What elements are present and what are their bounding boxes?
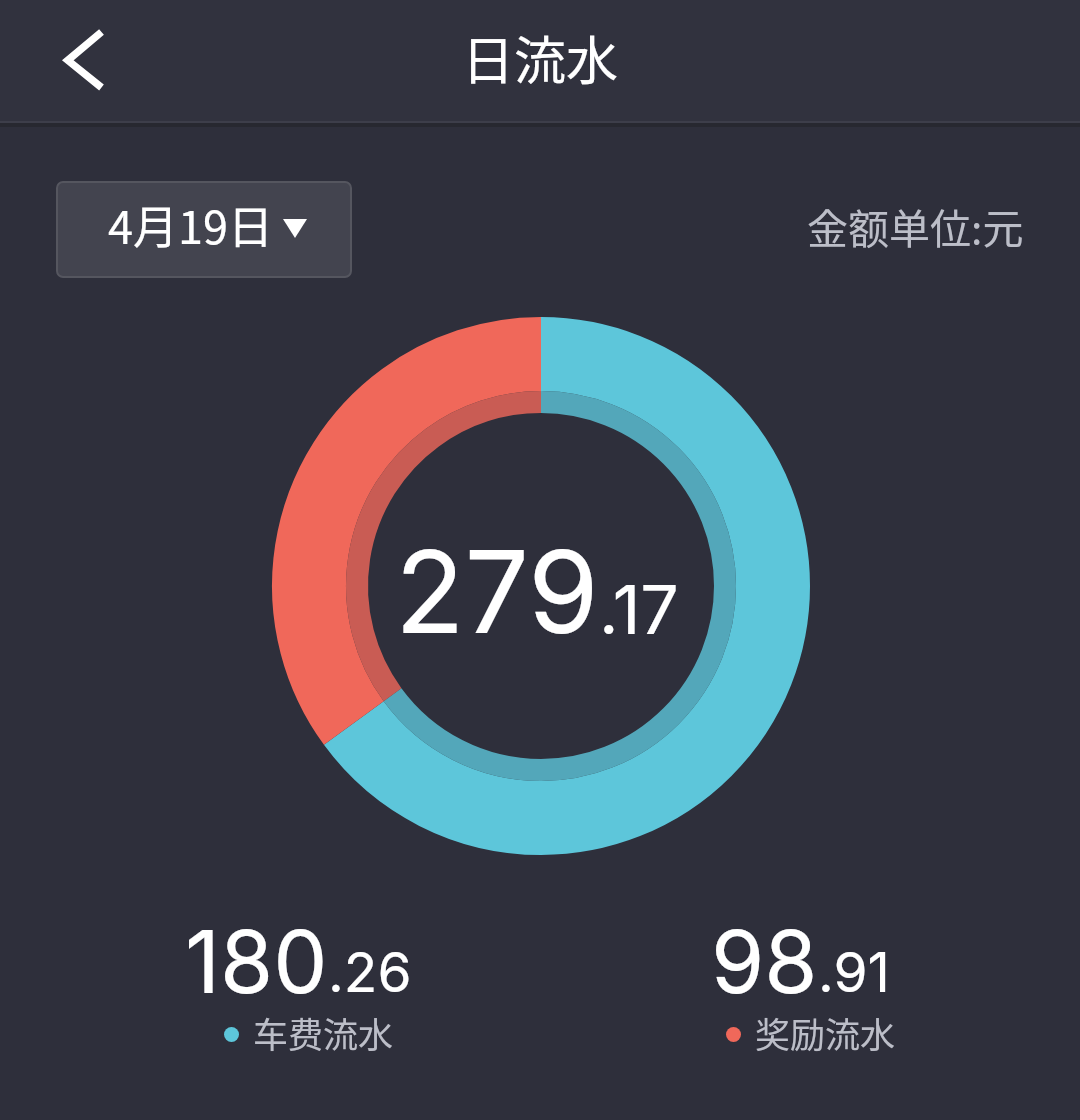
staticText: 4月19日 <box>108 192 273 257</box>
staticText: .26 <box>328 939 412 1006</box>
staticText: 奖励流水 <box>755 1007 896 1058</box>
staticText: 日流水 <box>462 20 619 95</box>
button[interactable]: 4月19日 <box>56 181 352 278</box>
staticText: .17 <box>599 568 679 650</box>
button[interactable]: 98 <box>600 910 1000 1110</box>
button[interactable]: 180 <box>98 910 498 1110</box>
staticText: .91 <box>818 939 890 1006</box>
staticText: 279 <box>395 523 599 661</box>
staticText: 180 <box>185 910 328 1014</box>
staticText: 车费流水 <box>253 1007 394 1058</box>
button[interactable]: Back <box>0 0 130 121</box>
staticText: 98 <box>711 910 818 1014</box>
staticText: 金额单位:元 <box>807 196 1024 255</box>
